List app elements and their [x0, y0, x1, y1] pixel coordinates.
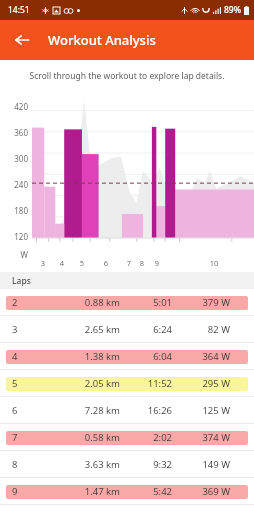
staticText: 120 — [4, 231, 28, 242]
staticText: 3 — [12, 323, 18, 336]
staticText: 180 — [4, 205, 28, 216]
staticText: 8 — [137, 258, 147, 268]
staticText: 16:26 — [120, 404, 172, 417]
staticText: 1.38 km — [46, 350, 120, 363]
staticText: 240 — [4, 179, 28, 190]
staticText: 2.65 km — [46, 323, 120, 336]
staticText: 6 — [101, 258, 111, 268]
staticText: 11:52 — [120, 377, 172, 390]
staticText: 0.58 km — [46, 431, 120, 444]
staticText: 8 — [12, 458, 18, 471]
staticText: 6:04 — [120, 350, 172, 363]
staticText: 6 — [12, 404, 18, 417]
staticText: 2:02 — [120, 431, 172, 444]
button[interactable]: Back — [8, 26, 36, 54]
staticText: 89% — [224, 4, 241, 16]
staticText: 9:32 — [120, 458, 172, 471]
staticText: 4 — [12, 350, 18, 363]
button[interactable]: 6 — [0, 397, 254, 424]
staticText: 5 — [77, 258, 87, 268]
staticText: 364 W — [172, 350, 230, 363]
staticText: 1.47 km — [46, 485, 120, 498]
staticText: 9 — [12, 485, 18, 498]
staticText: 379 W — [172, 296, 230, 309]
staticText: 5:01 — [120, 296, 172, 309]
button[interactable]: 8 — [0, 451, 254, 478]
button[interactable]: 5 — [0, 370, 254, 397]
staticText: 4 — [57, 258, 67, 268]
staticText: 149 W — [172, 458, 230, 471]
staticText: 360 — [4, 127, 28, 138]
staticText: 420 — [4, 101, 28, 112]
staticText: 7 — [124, 258, 134, 268]
staticText: 3 — [38, 258, 48, 268]
staticText: 9 — [152, 258, 162, 268]
staticText: 295 W — [172, 377, 230, 390]
button[interactable]: 3 — [0, 316, 254, 343]
staticText: 5:42 — [120, 485, 172, 498]
staticText: 369 W — [172, 485, 230, 498]
staticText: 7.28 km — [46, 404, 120, 417]
staticText: 10 — [209, 258, 219, 268]
staticText: Workout Analysis — [48, 31, 156, 49]
staticText: Laps — [12, 275, 31, 287]
staticText: 2.05 km — [46, 377, 120, 390]
button[interactable]: 7 — [0, 424, 254, 451]
staticText: 374 W — [172, 431, 230, 444]
staticText: 6:24 — [120, 323, 172, 336]
button[interactable]: 2 — [0, 289, 254, 316]
staticText: 7 — [12, 431, 18, 444]
staticText: Scroll through the workout to explore la… — [0, 70, 254, 82]
staticText: 125 W — [172, 404, 230, 417]
staticText: W — [4, 249, 28, 260]
button[interactable]: 9 — [0, 478, 254, 505]
button[interactable]: 4 — [0, 343, 254, 370]
staticText: 0.88 km — [46, 296, 120, 309]
staticText: 3.63 km — [46, 458, 120, 471]
staticText: 300 — [4, 153, 28, 164]
staticText: 14:51 — [8, 4, 30, 16]
staticText: 5 — [12, 377, 18, 390]
staticText: 2 — [12, 296, 18, 309]
staticText: 82 W — [172, 323, 230, 336]
